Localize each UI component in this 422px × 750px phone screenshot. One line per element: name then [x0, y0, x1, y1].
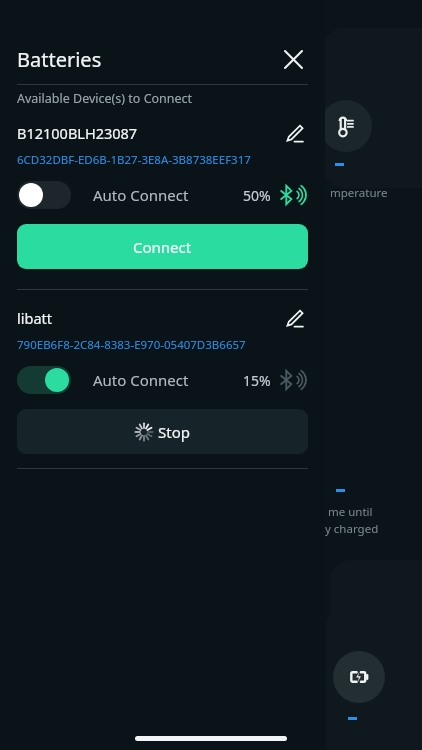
staticText: Available Device(s) to Connect: [17, 90, 193, 107]
staticText: me until: [328, 504, 373, 520]
button[interactable]: Edit name: [277, 118, 311, 148]
button[interactable]: Stop: [17, 409, 308, 454]
button[interactable]: Edit name: [277, 303, 311, 333]
staticText: 50%: [243, 186, 271, 205]
staticText: 6CD32DBF-ED6B-1B27-3E8A-3B8738EEF317: [17, 152, 251, 168]
staticText: y charged: [325, 521, 379, 537]
button[interactable]: Auto Connect toggle: [17, 181, 71, 209]
staticText: Auto Connect: [93, 370, 189, 390]
button[interactable]: Connect: [17, 224, 308, 269]
staticText: Batteries: [17, 46, 102, 73]
staticText: B12100BLH23087: [17, 123, 138, 143]
staticText: Stop: [158, 422, 190, 442]
staticText: mperature: [330, 185, 388, 201]
button[interactable]: Auto Connect toggle: [17, 366, 71, 394]
staticText: 790EB6F8-2C84-8383-E970-05407D3B6657: [17, 337, 246, 353]
staticText: Connect: [133, 237, 192, 257]
button[interactable]: Close: [275, 41, 311, 77]
staticText: Auto Connect: [93, 185, 189, 205]
staticText: libatt: [17, 308, 53, 328]
staticText: 15%: [243, 371, 271, 390]
